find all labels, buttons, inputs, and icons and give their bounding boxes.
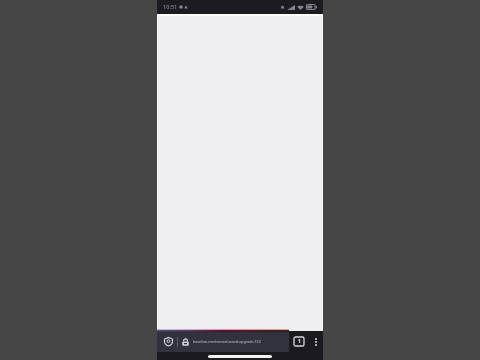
button[interactable]: Tabs: [289, 331, 309, 352]
button[interactable]: Site information: [178, 331, 193, 352]
staticText: baseline-mechanical-wood-upgrade-152: [193, 339, 261, 344]
button[interactable]: More options: [309, 331, 323, 352]
staticText: 1: [298, 338, 301, 345]
button[interactable]: baseline-mechanical-wood-upgrade-152: [193, 331, 289, 352]
button[interactable]: Brave Shields: [157, 331, 177, 352]
staticText: 10:51: [163, 3, 178, 11]
